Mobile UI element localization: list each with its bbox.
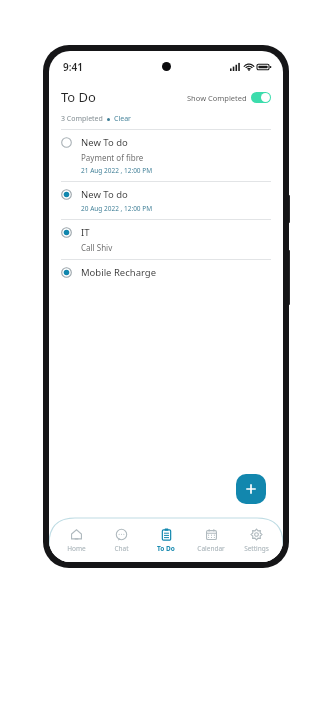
- staticText: New To do: [81, 136, 128, 149]
- staticText: Chat: [114, 544, 129, 553]
- button[interactable]: Completed: [49, 219, 283, 259]
- staticText: To Do: [157, 544, 175, 553]
- staticText: Call Shiv: [81, 242, 113, 253]
- staticText: To Do: [61, 88, 96, 106]
- button[interactable]: Calendar: [189, 526, 233, 555]
- staticText: 3 Completed: [61, 114, 103, 124]
- staticText: IT: [81, 226, 90, 239]
- button[interactable]: Completed: [49, 181, 283, 219]
- button[interactable]: Clear: [114, 114, 131, 124]
- button[interactable]: Add new to do: [236, 474, 266, 504]
- button[interactable]: Not completed: [49, 129, 283, 181]
- staticText: Payment of fibre: [81, 152, 144, 163]
- button[interactable]: Show Completed: [181, 89, 271, 106]
- other: Completed: [61, 227, 72, 238]
- staticText: Clear: [114, 114, 131, 124]
- staticText: Show Completed: [187, 93, 247, 103]
- button[interactable]: Home: [54, 526, 98, 555]
- staticText: 9:41: [63, 60, 83, 74]
- staticText: Home: [67, 544, 86, 553]
- button[interactable]: Chat: [99, 526, 143, 555]
- staticText: Calendar: [197, 544, 225, 553]
- staticText: New To do: [81, 188, 128, 201]
- other: Completed: [61, 189, 72, 200]
- staticText: 20 Aug 2022 , 12:00 PM: [81, 204, 153, 213]
- other: Not completed: [61, 137, 72, 148]
- button[interactable]: Completed: [49, 259, 283, 285]
- staticText: 21 Aug 2022 , 12:00 PM: [81, 166, 153, 175]
- button[interactable]: To Do: [144, 526, 188, 555]
- staticText: Mobile Recharge: [81, 266, 156, 279]
- staticText: Settings: [244, 544, 269, 553]
- other: Completed: [61, 267, 72, 278]
- button[interactable]: Settings: [234, 526, 278, 555]
